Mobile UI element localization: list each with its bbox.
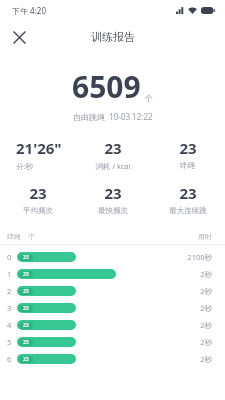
staticText: 1 [7, 269, 12, 279]
staticText: 23 [23, 339, 29, 346]
staticText: 6509 [72, 66, 141, 107]
staticText: 2秒 [200, 320, 212, 330]
staticText: 2秒 [200, 286, 212, 296]
staticText: 分:秒 [16, 161, 34, 171]
staticText: 6 [7, 354, 12, 364]
staticText: 消耗 / kcal [95, 161, 131, 171]
staticText: 5 [7, 337, 12, 347]
staticText: 个 [145, 93, 153, 103]
staticText: 23 [23, 254, 29, 261]
staticText: 23 [23, 305, 29, 312]
staticText: 平均频次 [23, 206, 53, 215]
staticText: 23 [23, 322, 29, 329]
button[interactable]: 6 [0, 350, 225, 367]
staticText: 绊绳 [180, 161, 195, 170]
staticText: 2秒 [200, 337, 212, 347]
button[interactable]: 3 [0, 299, 225, 316]
staticText: 23 [104, 138, 122, 158]
staticText: 自由跳绳 10-03 12:22 [73, 111, 153, 122]
staticText: 2100秒 [187, 252, 212, 262]
staticText: 最大连续跳 [169, 206, 207, 215]
staticText: 23 [23, 288, 29, 295]
button[interactable]: Close [8, 26, 30, 48]
staticText: 23 [23, 271, 29, 278]
button[interactable]: 1 [0, 265, 225, 282]
staticText: 23 [104, 183, 122, 203]
staticText: 2秒 [200, 354, 212, 364]
staticText: 0 [7, 252, 12, 262]
button[interactable]: 4 [0, 316, 225, 333]
staticText: 用时 [198, 232, 212, 241]
staticText: 23 [29, 183, 47, 203]
staticText: 个 [28, 232, 35, 241]
staticText: 绊绳 [7, 232, 21, 241]
button[interactable]: 2 [0, 282, 225, 299]
button[interactable]: 0 [0, 248, 225, 265]
button[interactable]: 5 [0, 333, 225, 350]
staticText: 2 [7, 286, 12, 296]
staticText: 23 [23, 356, 29, 363]
staticText: 下午 4:20 [12, 5, 46, 16]
staticText: 最快频次 [98, 206, 128, 215]
staticText: 2秒 [200, 269, 212, 279]
staticText: 3 [7, 303, 12, 313]
staticText: 23 [179, 183, 197, 203]
staticText: 2秒 [200, 303, 212, 313]
staticText: 4 [7, 320, 12, 330]
staticText: 训练报告 [91, 30, 135, 44]
staticText: 23 [179, 138, 197, 158]
staticText: 21'26" [16, 138, 62, 158]
